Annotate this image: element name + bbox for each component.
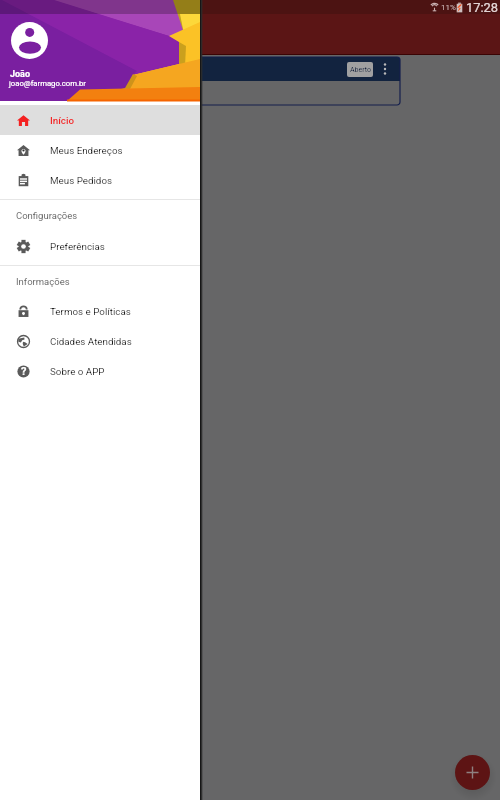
button[interactable]: Termos e Políticas	[0, 296, 200, 326]
button[interactable]: Início	[0, 105, 200, 135]
staticText: Termos e Políticas	[50, 306, 131, 317]
staticText: 17:28	[466, 0, 499, 14]
button[interactable]: Meus Endereços	[0, 135, 200, 165]
staticText: Meus Pedidos	[50, 175, 113, 186]
staticText: Sobre o APP	[50, 366, 105, 377]
button[interactable]: Preferências	[0, 231, 200, 261]
button[interactable]: ?	[0, 356, 200, 386]
button[interactable]: Meus Pedidos	[0, 165, 200, 195]
staticText: 11%	[441, 3, 456, 12]
staticText: Configurações	[16, 210, 78, 221]
staticText: ?	[21, 365, 27, 378]
staticText: Cidades Atendidas	[50, 336, 132, 347]
button[interactable]: Aberto	[347, 62, 373, 77]
staticText: Meus Endereços	[50, 145, 123, 156]
button[interactable]: Adicionar	[455, 755, 490, 790]
staticText: Preferências	[50, 241, 105, 252]
button[interactable]: Cidades Atendidas	[0, 326, 200, 356]
staticText: Início	[50, 115, 74, 126]
staticText: joao@farmago.com.br	[9, 79, 86, 88]
staticText: Aberto	[350, 66, 371, 74]
button[interactable]: Mais opções	[379, 59, 391, 79]
staticText: Informações	[16, 276, 70, 287]
staticText: João	[10, 69, 31, 80]
